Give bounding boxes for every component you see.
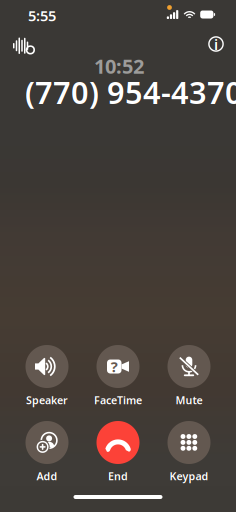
staticText: (770) 954-4370	[25, 72, 236, 112]
staticText: ?	[111, 357, 118, 376]
button[interactable]: End	[84, 421, 152, 483]
staticText: 10:52	[94, 53, 144, 79]
button[interactable]: Call info	[201, 29, 231, 59]
button[interactable]: Speaker	[13, 345, 81, 407]
button[interactable]: Mute	[155, 345, 223, 407]
staticText: Keypad	[169, 469, 208, 483]
staticText: Add	[36, 469, 57, 483]
button[interactable]: Audio output	[9, 31, 39, 61]
button[interactable]: Keypad	[155, 421, 223, 483]
button[interactable]: Add	[13, 421, 81, 483]
staticText: Speaker	[26, 393, 68, 407]
staticText: FaceTime	[94, 393, 142, 407]
staticText: Mute	[175, 393, 202, 407]
staticText: End	[108, 469, 128, 483]
staticText: 5:55	[28, 6, 56, 25]
staticText: i	[214, 35, 218, 54]
button[interactable]: ?	[84, 345, 152, 407]
